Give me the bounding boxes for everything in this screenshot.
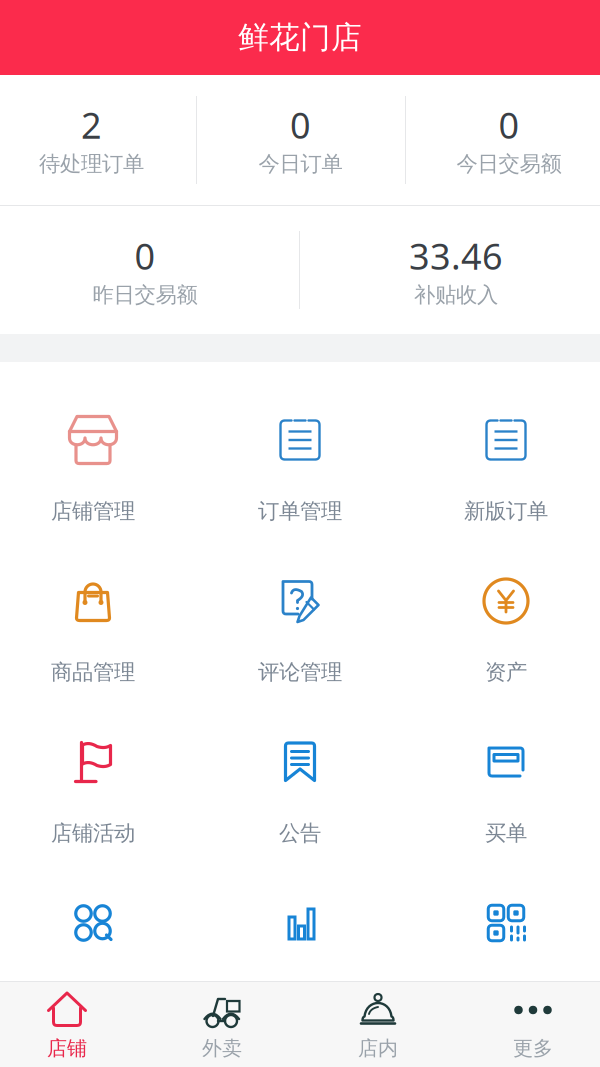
staticText: 经营数据 bbox=[258, 981, 342, 1007]
staticText: 扫码核销 bbox=[51, 981, 135, 1007]
staticText: 公告 bbox=[279, 820, 321, 846]
staticText: 外卖 bbox=[202, 1036, 242, 1061]
staticText: 评论管理 bbox=[258, 659, 342, 685]
staticText: 补贴收入 bbox=[414, 282, 498, 308]
button[interactable]: 店铺 bbox=[0, 982, 150, 1067]
button[interactable]: 经营数据 bbox=[200, 845, 400, 1006]
staticText: 新版订单 bbox=[464, 498, 548, 524]
button[interactable]: 收款码 bbox=[400, 845, 600, 1006]
staticText: 今日交易额 bbox=[456, 151, 561, 177]
staticText: 2 bbox=[81, 101, 102, 149]
staticText: 0 bbox=[134, 232, 155, 280]
button[interactable]: 评论管理 bbox=[200, 523, 400, 684]
staticText: 店内 bbox=[358, 1036, 398, 1061]
staticText: 今日订单 bbox=[258, 151, 342, 177]
staticText: 店铺 bbox=[47, 1036, 87, 1061]
button[interactable]: 订单管理 bbox=[200, 362, 400, 523]
button[interactable]: 更多 bbox=[450, 982, 600, 1067]
button[interactable]: 资产 bbox=[400, 523, 600, 684]
staticText: 商品管理 bbox=[51, 659, 135, 685]
button[interactable]: 公告 bbox=[200, 684, 400, 845]
staticText: 收款码 bbox=[474, 981, 537, 1007]
button[interactable]: 新版订单 bbox=[400, 362, 600, 523]
staticText: 待处理订单 bbox=[39, 151, 144, 177]
staticText: 昨日交易额 bbox=[92, 282, 197, 308]
staticText: 店铺管理 bbox=[51, 498, 135, 524]
staticText: 更多 bbox=[513, 1036, 553, 1061]
button[interactable]: 店铺活动 bbox=[0, 684, 200, 845]
button[interactable]: 商品管理 bbox=[0, 523, 200, 684]
staticText: 0 bbox=[498, 101, 519, 149]
staticText: 33.46 bbox=[409, 232, 503, 280]
staticText: 买单 bbox=[485, 820, 527, 846]
staticText: 鲜花门店 bbox=[238, 19, 362, 56]
button[interactable]: 店铺管理 bbox=[0, 362, 200, 523]
staticText: 订单管理 bbox=[258, 498, 342, 524]
button[interactable]: 外卖 bbox=[150, 982, 300, 1067]
staticText: 资产 bbox=[485, 659, 527, 685]
button[interactable]: 扫码核销 bbox=[0, 845, 200, 1006]
staticText: 0 bbox=[290, 101, 311, 149]
staticText: 店铺活动 bbox=[51, 820, 135, 846]
button[interactable]: 店内 bbox=[300, 982, 450, 1067]
button[interactable]: 买单 bbox=[400, 684, 600, 845]
